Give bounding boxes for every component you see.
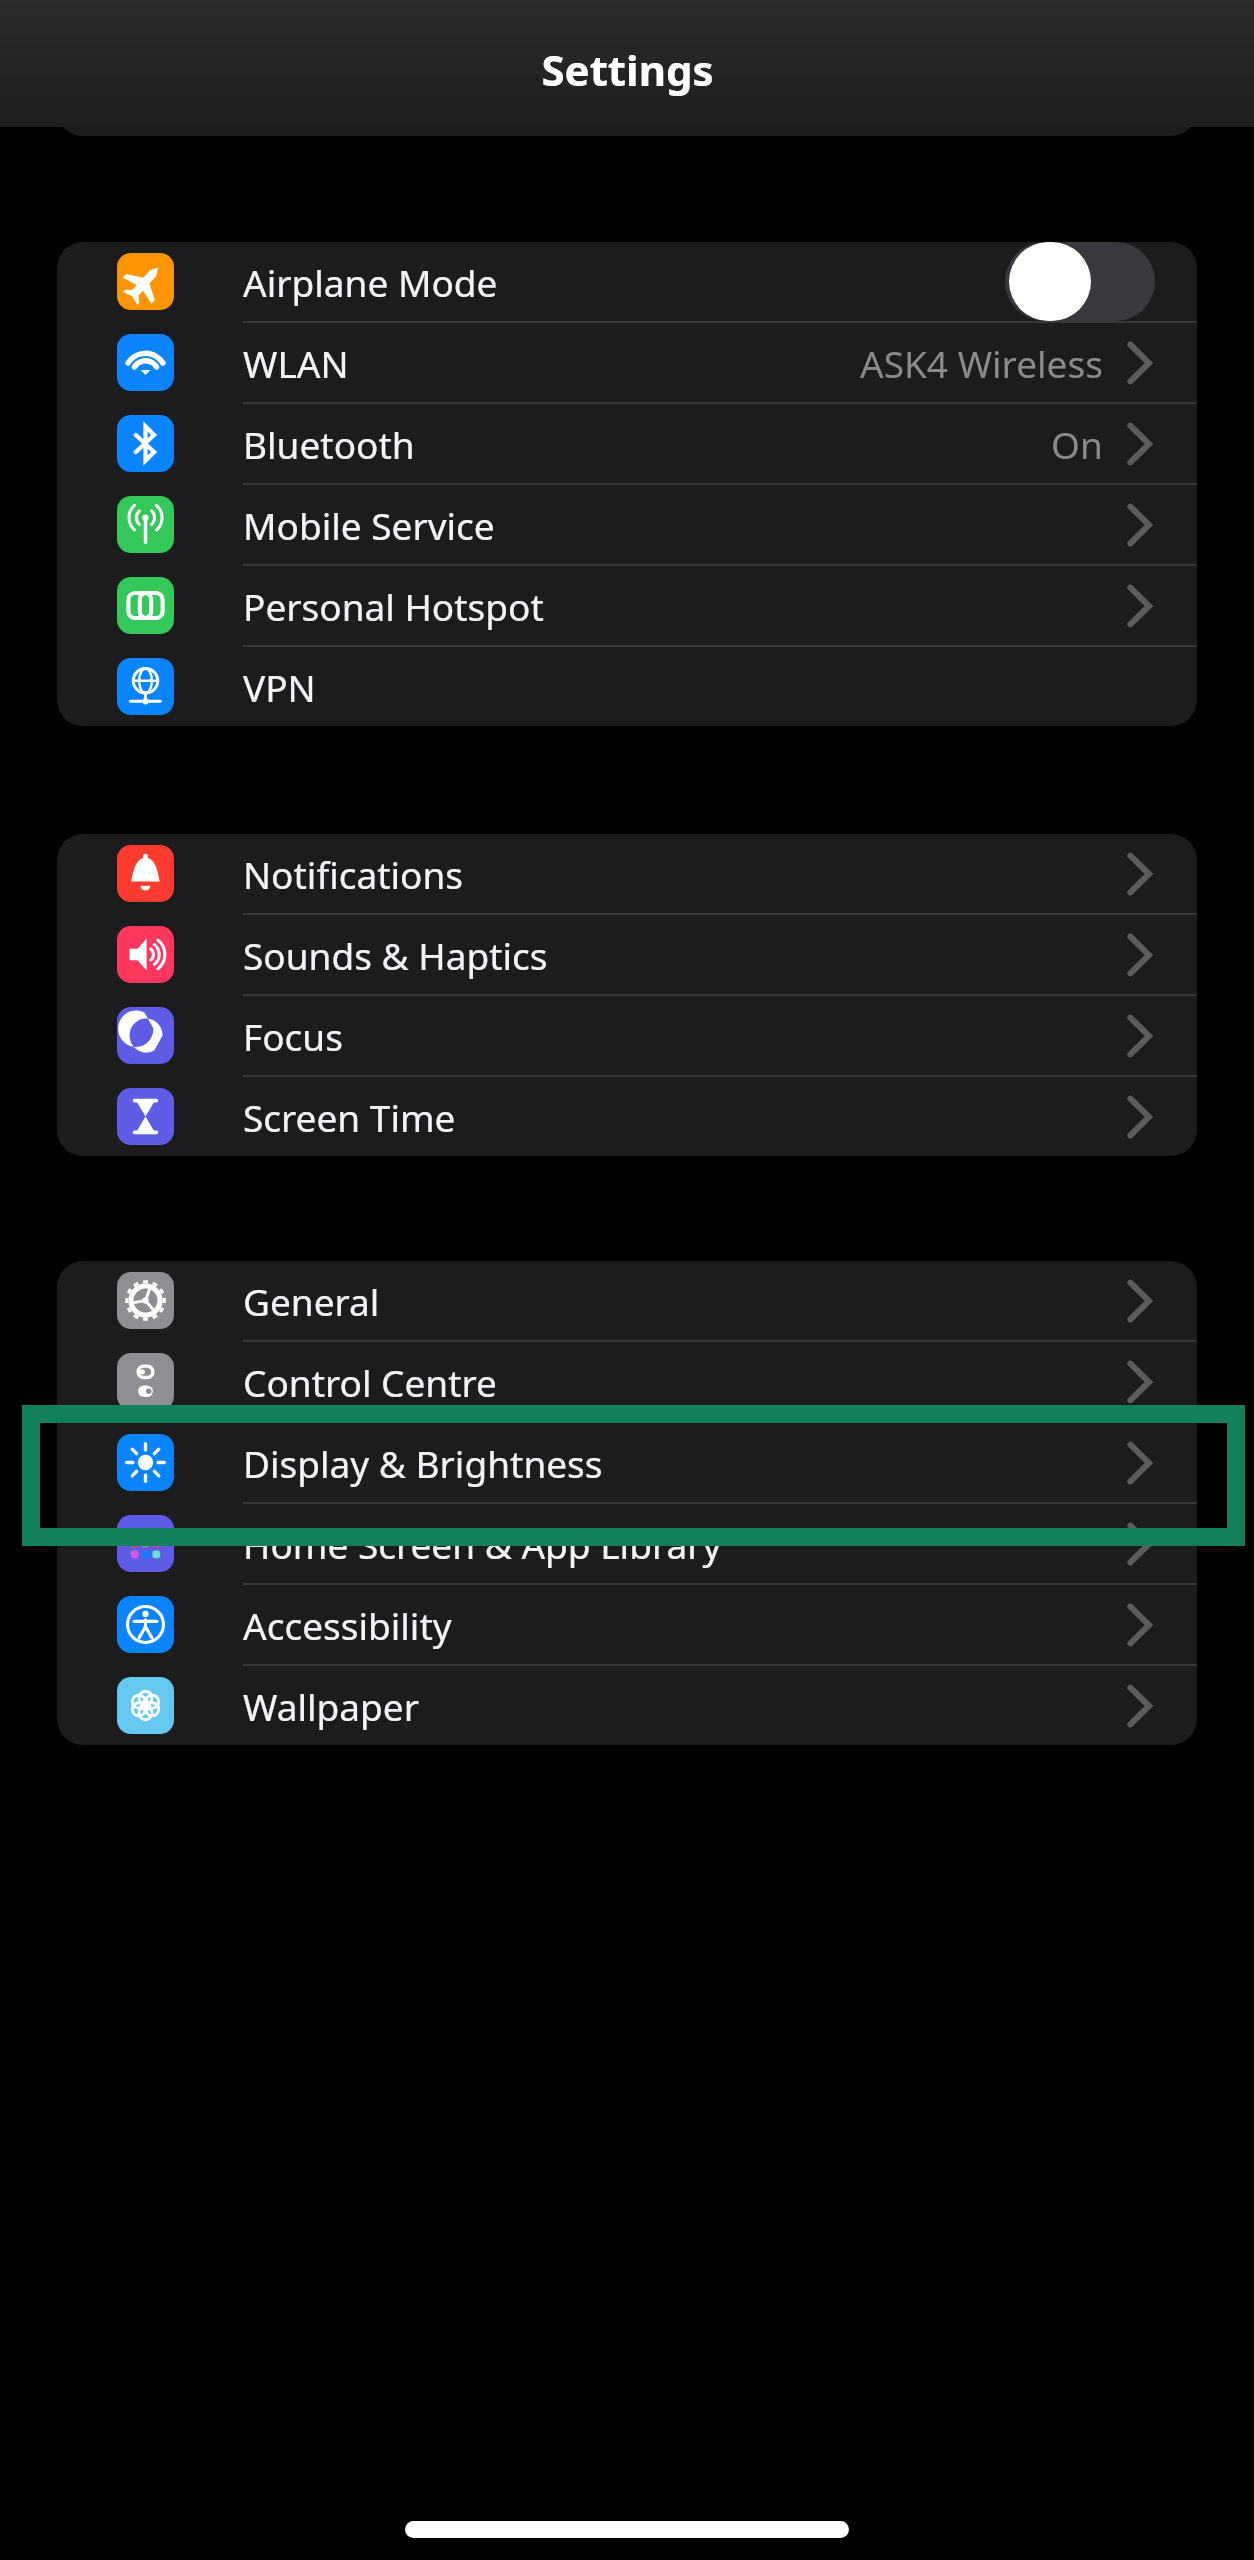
button[interactable]: Bluetooth [57,404,1197,483]
button[interactable]: Wallpaper [57,1666,1197,1745]
button[interactable]: Screen Time [57,1077,1197,1156]
staticText: General [243,1276,380,1326]
button[interactable]: Focus [57,996,1197,1075]
staticText: Settings [541,41,714,98]
staticText: Notifications [243,849,464,899]
staticText: Wallpaper [243,1681,419,1731]
button[interactable]: Mobile Service [57,485,1197,564]
staticText: ASK4 Wireless [860,338,1103,388]
staticText: Sounds & Haptics [243,930,548,980]
button[interactable]: Display & Brightness [57,1423,1197,1502]
button[interactable]: Home Screen & App Library [57,1504,1197,1583]
staticText: Mobile Service [243,500,495,550]
staticText: Display & Brightness [243,1438,603,1488]
button[interactable]: General [57,1261,1197,1340]
button[interactable]: Notifications [57,834,1197,913]
staticText: Accessibility [243,1600,452,1650]
staticText: Bluetooth [243,419,415,469]
staticText: Home Screen & App Library [243,1519,722,1569]
staticText: Focus [243,1011,343,1061]
staticText: Personal Hotspot [243,581,544,631]
button[interactable]: Personal Hotspot [57,566,1197,645]
button[interactable]: Airplane Mode toggle [1005,242,1155,321]
staticText: Screen Time [243,1092,456,1142]
staticText: VPN [243,662,316,712]
staticText: WLAN [243,338,349,388]
button[interactable]: Sounds & Haptics [57,915,1197,994]
button[interactable]: WLAN [57,323,1197,402]
button[interactable]: VPN [57,647,1197,726]
button[interactable]: Accessibility [57,1585,1197,1664]
button[interactable]: Airplane Mode [57,242,1197,321]
button[interactable]: Control Centre [57,1342,1197,1421]
staticText: Control Centre [243,1357,497,1407]
staticText: On [1051,419,1103,469]
staticText: Airplane Mode [243,257,498,307]
